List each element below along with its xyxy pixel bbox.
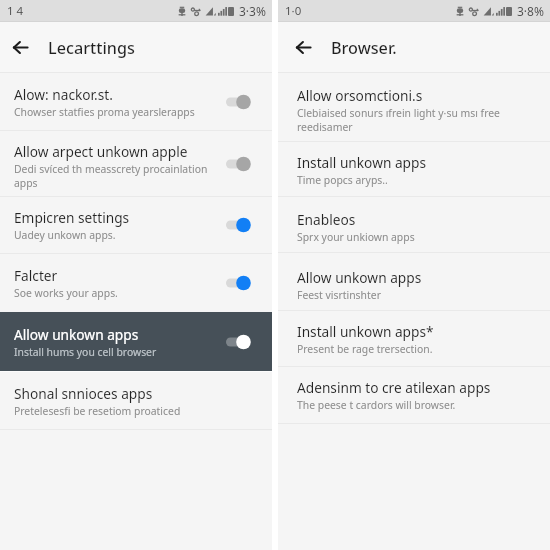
button[interactable]: Install unkown apps bbox=[278, 142, 550, 196]
button[interactable]: Toggle Allow arpect unkown apple bbox=[226, 156, 251, 172]
staticText: Time popcs aryps.. bbox=[297, 173, 388, 187]
button[interactable]: Install unkown apps* bbox=[278, 311, 550, 366]
button[interactable]: Back bbox=[289, 33, 317, 61]
staticText: Shonal snnioces apps bbox=[14, 384, 153, 403]
staticText: Allow unkown apps bbox=[14, 325, 139, 344]
button[interactable]: Toggle Empicren settings bbox=[226, 217, 251, 233]
staticText: Install unkown apps* bbox=[297, 322, 434, 341]
staticText: Allow orsomctioni.s bbox=[297, 86, 423, 105]
staticText: Pretelesesfi be resetiom proaticed bbox=[14, 404, 181, 418]
staticText: The peese t cardors will browser. bbox=[297, 398, 456, 412]
staticText: Soe works your apps. bbox=[14, 286, 118, 300]
button[interactable]: Shonal snnioces apps bbox=[0, 372, 272, 429]
button[interactable]: Allow unkown apps bbox=[0, 312, 272, 371]
staticText: 1·0 bbox=[285, 3, 302, 19]
staticText: Enableos bbox=[297, 210, 356, 229]
button[interactable]: Toggle Falcter bbox=[226, 275, 251, 291]
button[interactable]: Adensinm to cre atilexan apps bbox=[278, 367, 550, 423]
staticText: Falcter bbox=[14, 266, 58, 285]
button[interactable]: Enableos bbox=[278, 197, 550, 252]
staticText: Chowser statfies proma yearslerapps bbox=[14, 105, 195, 119]
staticText: Allow unkown apps bbox=[297, 268, 422, 287]
staticText: Adensinm to cre atilexan apps bbox=[297, 378, 491, 397]
button[interactable]: Back bbox=[6, 33, 34, 61]
button[interactable]: Empicren settings bbox=[0, 197, 272, 253]
button[interactable]: Allow arpect unkown apple bbox=[0, 131, 272, 196]
button[interactable]: Toggle Allow unkown apps bbox=[226, 334, 251, 350]
staticText: Clebiaised sonurs ıfrein light y·su msı … bbox=[297, 106, 529, 134]
staticText: Uadey unkown apps. bbox=[14, 228, 116, 242]
staticText: 3·3% bbox=[239, 3, 266, 19]
button[interactable]: Alow: nackor.st. bbox=[0, 73, 272, 130]
staticText: Allow arpect unkown apple bbox=[14, 142, 188, 161]
staticText: 1 4 bbox=[7, 3, 24, 19]
staticText: Install unkown apps bbox=[297, 153, 426, 172]
staticText: Sprx your unkiown apps bbox=[297, 230, 415, 244]
button[interactable]: Allow unkown apps bbox=[278, 253, 550, 310]
staticText: Lecarttings bbox=[48, 37, 135, 59]
staticText: Browser. bbox=[331, 37, 397, 59]
staticText: Empicren settings bbox=[14, 208, 130, 227]
staticText: 3·8% bbox=[517, 3, 544, 19]
button[interactable]: Allow orsomctioni.s bbox=[278, 73, 550, 141]
staticText: Install hums you cell browser bbox=[14, 345, 157, 359]
button[interactable]: Falcter bbox=[0, 254, 272, 312]
staticText: Alow: nackor.st. bbox=[14, 85, 113, 104]
staticText: Feest visrtinshter bbox=[297, 288, 381, 302]
button[interactable]: Toggle Alow: nackor.st. bbox=[226, 94, 251, 110]
staticText: Present be rage trersection. bbox=[297, 342, 433, 356]
staticText: Dedi svíced th measscrety procainlation … bbox=[14, 162, 218, 190]
